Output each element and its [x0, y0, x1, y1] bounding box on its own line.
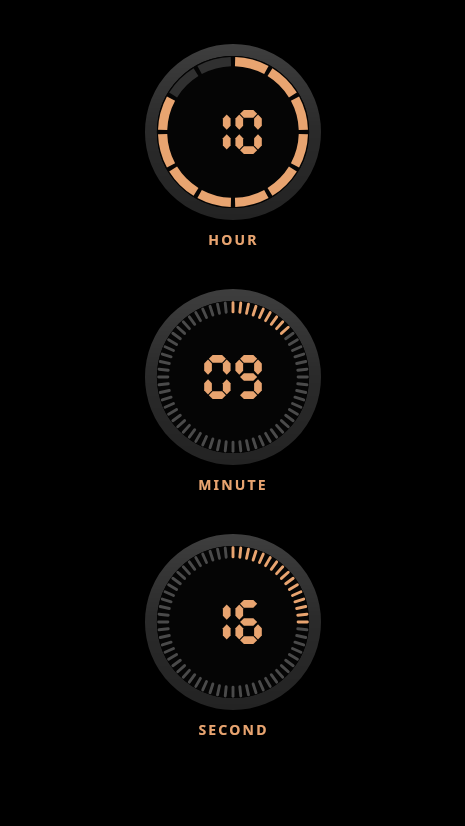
staticText: MINUTE [198, 475, 268, 494]
staticText: HOUR [208, 230, 259, 249]
button[interactable]: MINUTE [145, 289, 321, 494]
button[interactable]: SECOND [145, 534, 321, 739]
button[interactable]: HOUR [145, 44, 321, 249]
staticText: SECOND [198, 720, 269, 739]
